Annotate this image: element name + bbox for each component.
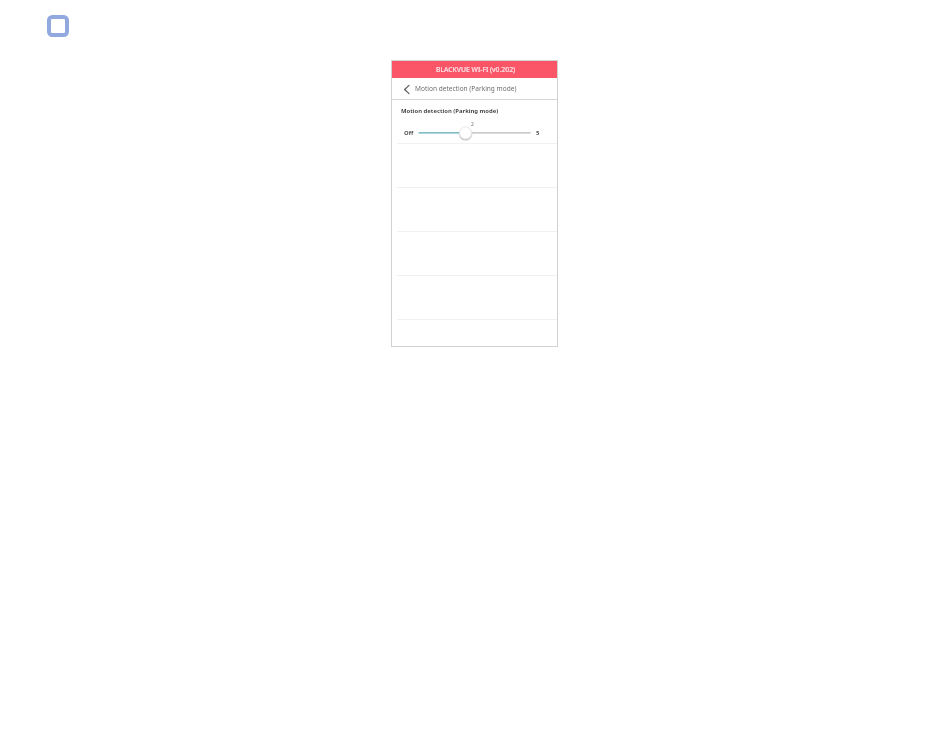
button[interactable]: Back [391,78,558,99]
staticText: BLACKVUE WI-FI (v0.202) [436,65,516,74]
button[interactable] [391,144,558,187]
staticText: 2 [471,121,474,128]
button[interactable]: Motion detection sensitivity [391,125,558,139]
staticText: Motion detection (Parking mode) [401,107,499,115]
button[interactable]: Motion detection (Parking mode) [391,100,558,143]
staticText: Motion detection (Parking mode) [415,84,517,93]
button[interactable] [391,188,558,231]
button[interactable] [391,232,558,275]
button[interactable]: Stop [47,15,69,37]
staticText: Off [404,129,414,137]
button[interactable] [391,276,558,319]
staticText: 5 [536,129,540,137]
other: Back [404,85,409,94]
